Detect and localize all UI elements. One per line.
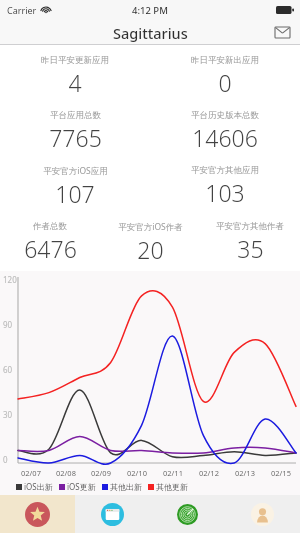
staticText: iOS更新 <box>67 481 96 492</box>
button[interactable]: 作者总数 <box>0 221 100 264</box>
staticText: 02/07 <box>21 468 41 478</box>
staticText: 107 <box>55 178 95 209</box>
staticText: 103 <box>205 177 245 208</box>
staticText: 02/09 <box>91 468 111 478</box>
staticText: 35 <box>237 233 264 264</box>
staticText: 7765 <box>49 122 102 153</box>
button[interactable]: 平安官方iOS作者 <box>100 221 200 265</box>
staticText: 平安官方其他应用 <box>191 165 259 176</box>
staticText: 平安官方iOS作者 <box>118 221 183 233</box>
staticText: 其他出新 <box>110 482 142 492</box>
button[interactable]: 平安官方iOS应用 <box>0 165 150 209</box>
button[interactable]: 昨日平安新出应用 <box>150 55 300 98</box>
staticText: 4 <box>68 67 82 98</box>
button[interactable]: Apps <box>75 495 150 533</box>
staticText: 02/08 <box>56 468 76 478</box>
button[interactable]: 昨日平安更新应用 <box>0 55 150 98</box>
staticText: 平台应用总数 <box>50 110 101 121</box>
staticText: 20 <box>137 234 164 265</box>
staticText: 02/11 <box>163 468 183 478</box>
button[interactable]: 平安官方其他应用 <box>150 165 300 208</box>
button[interactable]: 平台历史版本总数 <box>150 110 300 153</box>
staticText: 平安官方其他作者 <box>216 221 284 232</box>
button[interactable]: Messages <box>269 20 295 45</box>
staticText: Carrier <box>7 4 37 16</box>
staticText: 昨日平安更新应用 <box>41 55 109 66</box>
staticText: Sagittarius <box>113 23 188 43</box>
button[interactable]: Radar <box>150 495 225 533</box>
staticText: 4:12 PM <box>132 4 168 17</box>
staticText: 02/13 <box>235 468 255 478</box>
staticText: 120 <box>3 274 17 285</box>
staticText: 6476 <box>24 233 77 264</box>
staticText: 作者总数 <box>33 221 67 232</box>
staticText: 其他更新 <box>156 482 188 492</box>
staticText: 60 <box>3 364 13 375</box>
staticText: iOS出新 <box>24 481 53 492</box>
staticText: 平台历史版本总数 <box>191 110 259 121</box>
button[interactable]: 平安官方其他作者 <box>200 221 300 264</box>
staticText: 90 <box>3 319 13 330</box>
staticText: 0 <box>3 454 8 465</box>
staticText: 02/12 <box>199 468 219 478</box>
button[interactable]: Favorites <box>0 495 75 533</box>
button[interactable]: Profile <box>225 495 300 533</box>
staticText: 0 <box>218 67 232 98</box>
staticText: 02/10 <box>127 468 147 478</box>
staticText: 02/15 <box>271 468 291 478</box>
staticText: 平安官方iOS应用 <box>43 165 108 177</box>
staticText: 14606 <box>192 122 258 153</box>
button[interactable]: 平台应用总数 <box>0 110 150 153</box>
staticText: 昨日平安新出应用 <box>191 55 259 66</box>
staticText: 30 <box>3 409 13 420</box>
